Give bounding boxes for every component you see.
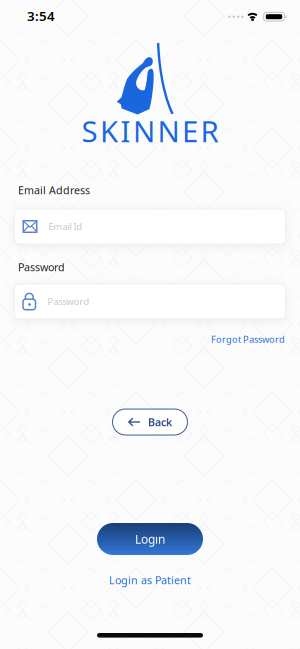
staticText: Email Address bbox=[18, 183, 90, 197]
staticText: Login as Patient bbox=[109, 573, 191, 587]
staticText: Password bbox=[47, 295, 89, 308]
staticText: Back bbox=[148, 415, 172, 429]
staticText: Login bbox=[135, 531, 165, 547]
button[interactable]: Login as Patient bbox=[109, 573, 191, 587]
staticText: SKINNER bbox=[81, 111, 218, 150]
staticText: Password bbox=[18, 260, 65, 274]
staticText: Forgot Password bbox=[211, 333, 285, 345]
button[interactable]: Password bbox=[14, 284, 285, 319]
button[interactable]: Login bbox=[97, 523, 203, 555]
button[interactable]: Back bbox=[112, 409, 187, 435]
button[interactable]: Forgot Password bbox=[211, 333, 285, 345]
staticText: 3:54 bbox=[27, 7, 55, 25]
staticText: Email Id bbox=[48, 220, 82, 233]
button[interactable]: Email Id bbox=[14, 209, 285, 244]
